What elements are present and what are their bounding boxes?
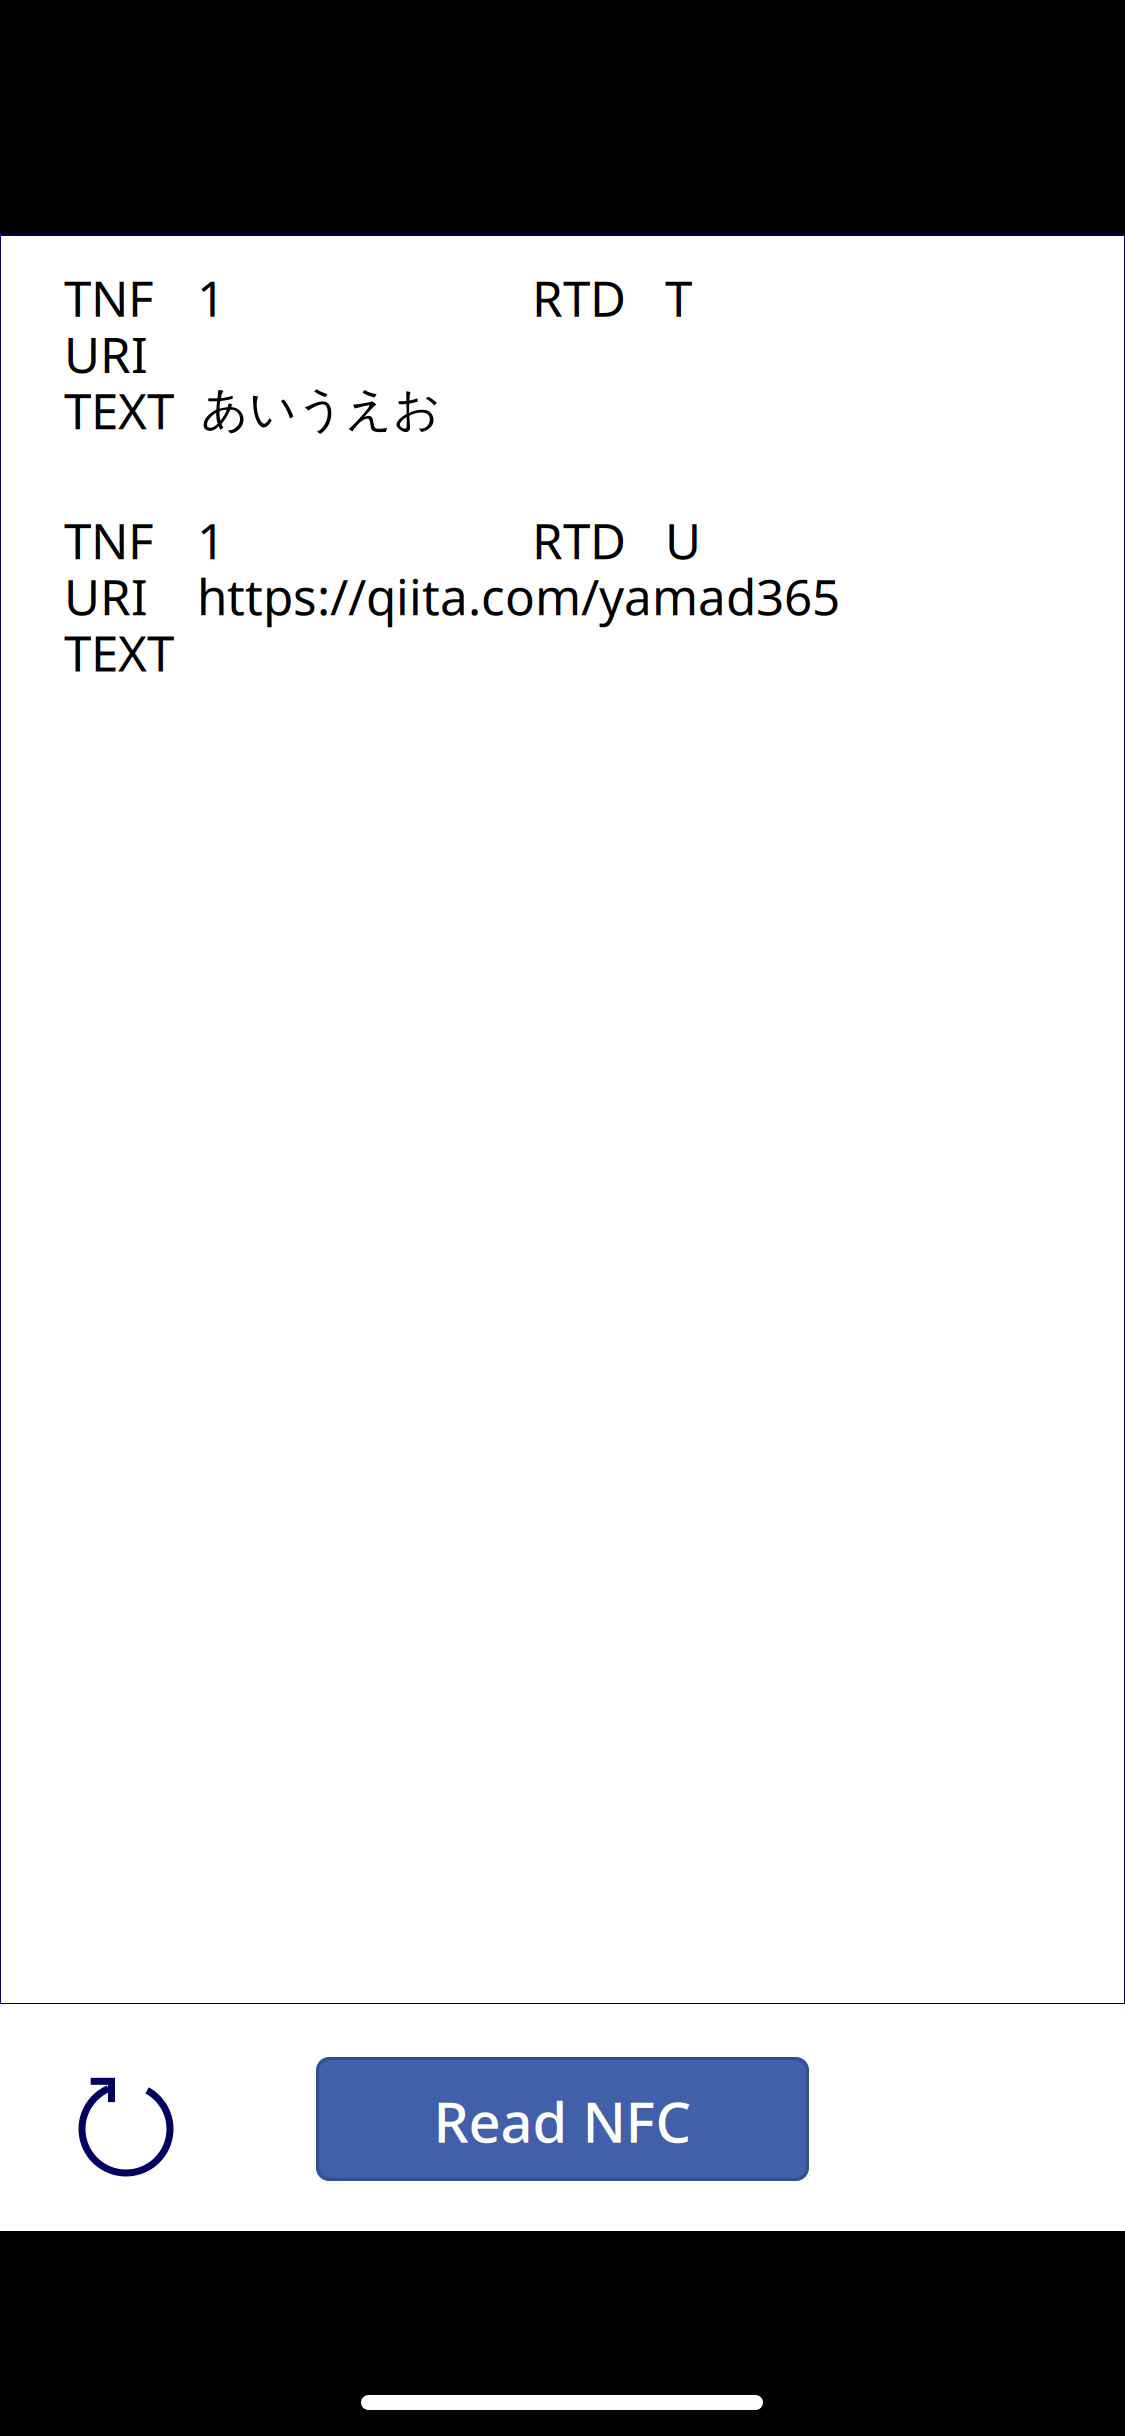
staticText: URI (64, 563, 148, 630)
staticText: あいうえお (201, 380, 441, 439)
staticText: TEXT (64, 619, 174, 686)
staticText: Read NFC (433, 2083, 691, 2159)
staticText: 1 (197, 264, 225, 331)
staticText: TNF (64, 506, 154, 574)
staticText: https://qiita.com/yamad365 (197, 563, 840, 630)
staticText: URI (64, 320, 148, 387)
staticText: RTD (532, 264, 626, 331)
button[interactable]: Read NFC (316, 2057, 809, 2181)
staticText: TNF (64, 264, 154, 331)
staticText: U (665, 506, 701, 574)
button[interactable]: Reload (67, 2070, 185, 2188)
staticText: TEXT (64, 376, 174, 444)
staticText: T (665, 264, 692, 331)
staticText: RTD (532, 506, 626, 574)
staticText: 1 (197, 506, 225, 574)
